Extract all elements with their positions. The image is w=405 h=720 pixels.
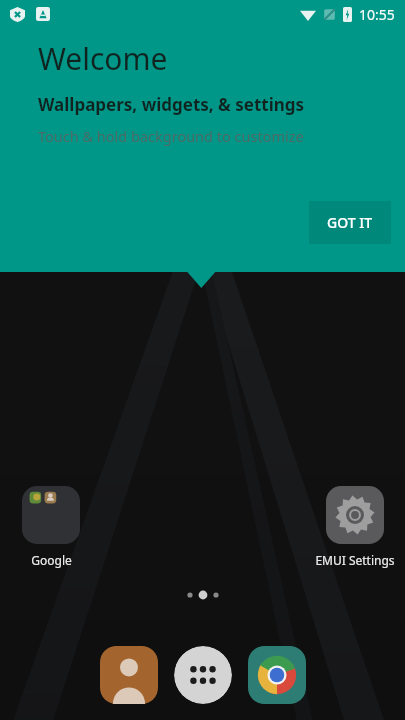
staticText: GOT IT	[327, 213, 373, 232]
staticText: EMUI Settings	[315, 552, 395, 568]
button[interactable]: Contacts	[100, 646, 158, 704]
button[interactable]: Chrome	[248, 646, 306, 704]
button[interactable]: Apps	[174, 646, 232, 704]
staticText: Wallpapers, widgets, & settings	[38, 93, 305, 116]
staticText: Welcome	[38, 38, 168, 79]
staticText: 10:55	[359, 5, 395, 24]
staticText: Google	[31, 552, 72, 568]
button[interactable]: EMUI Settings	[313, 486, 397, 568]
button[interactable]: GOT IT	[309, 201, 391, 244]
staticText: Touch & hold background to customize	[38, 126, 304, 146]
button[interactable]: Google	[20, 486, 82, 568]
